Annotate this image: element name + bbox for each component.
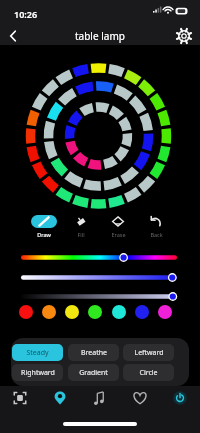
button[interactable]: Breathe (68, 344, 119, 361)
staticText: Erase (111, 231, 126, 238)
button[interactable]: Lights (44, 382, 76, 414)
button[interactable]: Fill (64, 213, 98, 238)
button[interactable]: Scenes (4, 382, 36, 414)
button[interactable]: Back (139, 213, 173, 238)
button[interactable]: Settings (172, 24, 195, 47)
staticText: table lamp (75, 29, 125, 43)
staticText: Leftward (134, 348, 164, 358)
button[interactable]: Slider (18, 251, 182, 264)
button[interactable]: Colour swatch (112, 305, 126, 319)
staticText: Circle (139, 368, 158, 378)
staticText: Gradient (79, 368, 108, 378)
staticText: Fill (77, 231, 85, 238)
button[interactable]: Colour swatch (65, 305, 79, 319)
button[interactable]: Circle (123, 364, 174, 381)
button[interactable]: Colour swatch (158, 305, 172, 319)
button[interactable]: Power (164, 382, 196, 414)
button[interactable]: Gradient (68, 364, 119, 381)
button[interactable]: Slider (18, 271, 182, 284)
staticText: Rightward (21, 368, 55, 378)
button[interactable]: Erase (101, 213, 135, 238)
button[interactable]: Colour swatch (135, 305, 149, 319)
button[interactable]: Rightward (12, 364, 63, 381)
button[interactable]: Colour swatch (19, 305, 33, 319)
button[interactable]: Draw (27, 213, 61, 238)
button[interactable]: Favourites (124, 382, 156, 414)
button[interactable]: Leftward (123, 344, 174, 361)
button[interactable]: Colour swatch (42, 305, 56, 319)
button[interactable]: Steady (12, 344, 63, 361)
button[interactable]: Music (84, 382, 116, 414)
button[interactable]: Back (1, 24, 24, 47)
staticText: Breathe (81, 348, 107, 358)
staticText: Steady (26, 348, 49, 358)
button[interactable]: Colour swatch (88, 305, 102, 319)
staticText: Draw (37, 231, 51, 238)
staticText: Back (150, 231, 163, 238)
staticText: 10:26 (14, 8, 38, 20)
button[interactable]: Slider (18, 290, 182, 303)
